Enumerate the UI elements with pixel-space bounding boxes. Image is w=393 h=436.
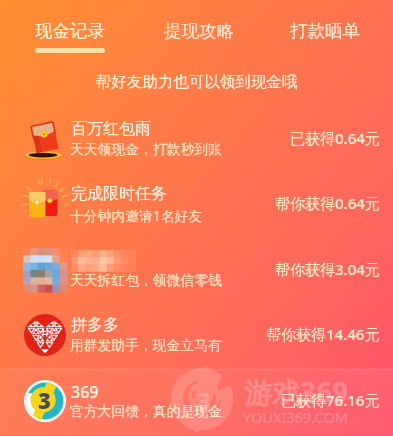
button[interactable]: 打款晒单 bbox=[279, 10, 371, 56]
button[interactable]: 3 bbox=[0, 368, 393, 432]
button[interactable]: 拼多多 bbox=[0, 302, 393, 366]
staticText: 天天领现金，打款秒到账 bbox=[70, 141, 222, 158]
staticText: 打款晒单 bbox=[290, 20, 360, 42]
staticText: 帮好友助力也可以领到现金哦 bbox=[0, 72, 393, 92]
staticText: 天天拆红包，领微信零钱 bbox=[70, 272, 222, 289]
staticText: 3 bbox=[38, 385, 51, 415]
button[interactable]: 完成限时任务 bbox=[0, 171, 393, 235]
staticText: 官方大回馈，真的是现金 bbox=[70, 403, 222, 420]
staticText: 现金记录 bbox=[35, 20, 105, 42]
staticText: 已获得76.16元 bbox=[281, 390, 380, 410]
button[interactable]: 提现攻略 bbox=[153, 10, 245, 56]
staticText: 游戏369 bbox=[244, 373, 349, 411]
staticText: 百万红包雨 bbox=[71, 119, 151, 139]
staticText: 用群发助手，现金立马有 bbox=[70, 337, 222, 354]
staticText: YOUXI369.COM bbox=[243, 407, 348, 427]
staticText: 完成限时任务 bbox=[71, 184, 167, 204]
staticText: 拼多多 bbox=[71, 315, 119, 335]
staticText: 帮你获得3.04元 bbox=[275, 259, 380, 279]
staticText: 帮你获得0.64元 bbox=[275, 193, 380, 213]
button[interactable]: 百万红包雨 bbox=[0, 106, 393, 170]
button[interactable]: 天天拆红包，领微信零钱 bbox=[0, 237, 393, 301]
staticText: 帮你获得14.46元 bbox=[266, 324, 380, 344]
staticText: 3 bbox=[197, 385, 211, 416]
staticText: 提现攻略 bbox=[164, 20, 234, 42]
staticText: 369 bbox=[71, 381, 99, 403]
staticText: 十分钟内邀请1名好友 bbox=[70, 206, 203, 225]
staticText: 已获得0.64元 bbox=[290, 128, 380, 148]
button[interactable]: 现金记录 bbox=[24, 10, 116, 56]
